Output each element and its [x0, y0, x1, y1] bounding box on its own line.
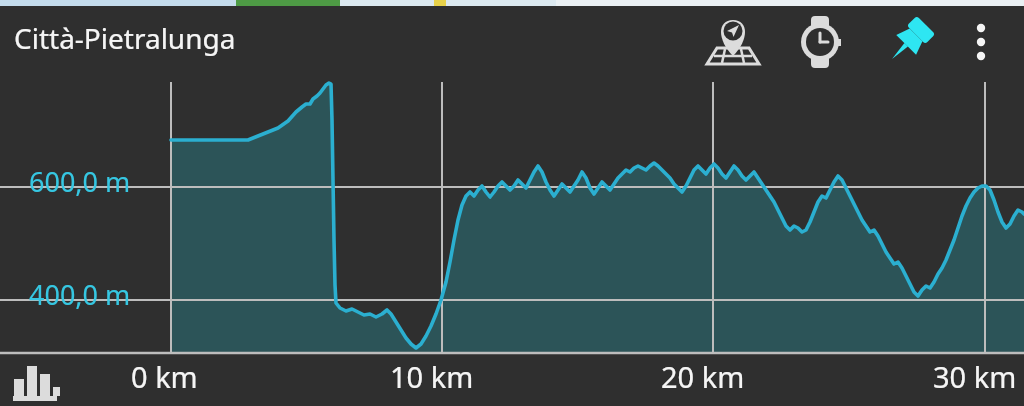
staticText: 400,0 m — [29, 276, 131, 313]
staticText: 0 km — [131, 357, 198, 396]
staticText: 10 km — [390, 357, 474, 396]
staticText: 20 km — [661, 357, 745, 396]
button[interactable]: Pin — [882, 14, 936, 70]
staticText: 30 km — [933, 357, 1017, 396]
staticText: Città-Pietralunga — [14, 19, 236, 57]
button[interactable]: Show on map — [705, 14, 763, 70]
button[interactable]: More options — [960, 12, 1002, 72]
button[interactable]: Connect watch — [794, 14, 848, 70]
button[interactable]: Statistics — [8, 356, 64, 404]
staticText: 600,0 m — [29, 163, 131, 200]
